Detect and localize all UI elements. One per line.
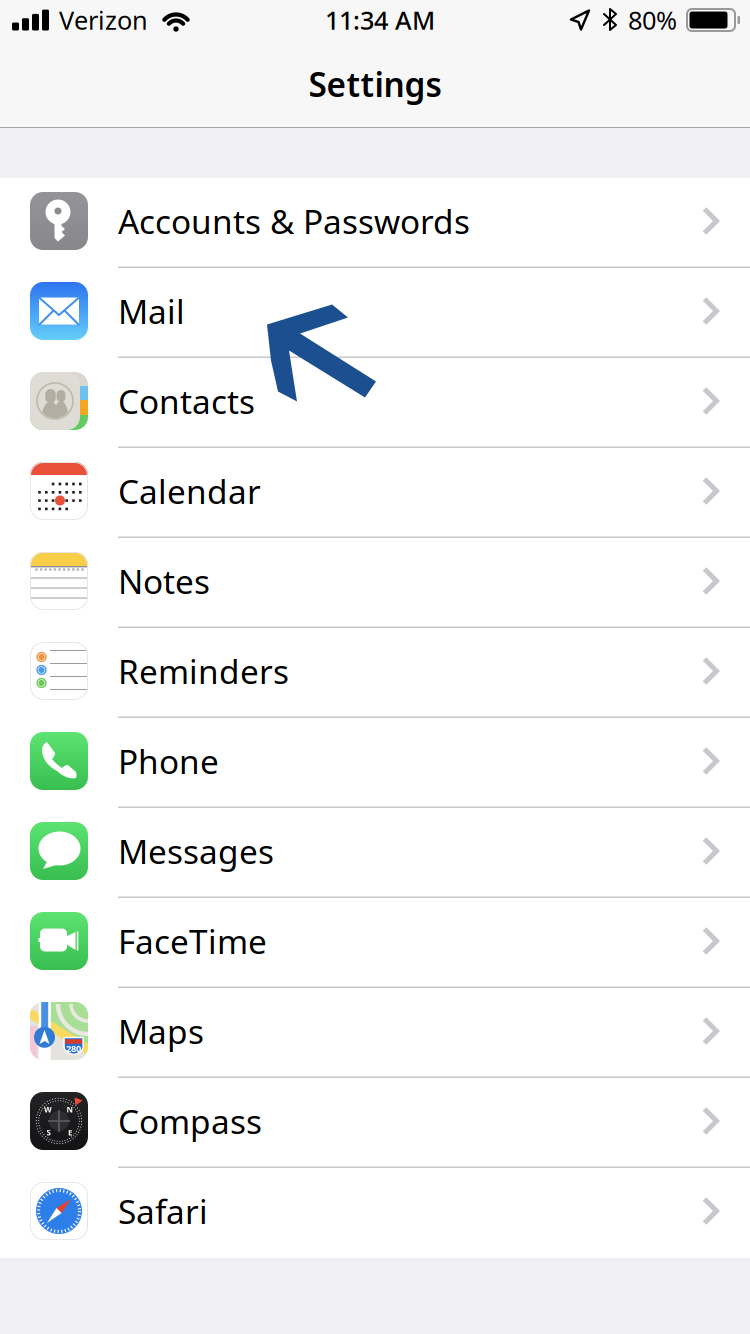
- staticText: 280: [66, 1042, 81, 1055]
- button[interactable]: W: [0, 1078, 750, 1168]
- button[interactable]: Phone: [0, 718, 750, 808]
- staticText: Messages: [118, 829, 274, 873]
- staticText: 80%: [628, 3, 677, 37]
- staticText: Accounts & Passwords: [118, 199, 470, 243]
- button[interactable]: Accounts & Passwords: [0, 178, 750, 268]
- staticText: Settings: [308, 62, 441, 106]
- button[interactable]: Mail: [0, 268, 750, 358]
- staticText: N: [66, 1104, 73, 1115]
- staticText: Contacts: [118, 379, 255, 423]
- button[interactable]: Reminders: [0, 628, 750, 718]
- button[interactable]: Notes: [0, 538, 750, 628]
- button[interactable]: Messages: [0, 808, 750, 898]
- staticText: Compass: [118, 1099, 262, 1143]
- button[interactable]: Contacts: [0, 358, 750, 448]
- staticText: Reminders: [118, 649, 289, 693]
- staticText: S: [46, 1127, 50, 1138]
- staticText: FaceTime: [118, 919, 267, 963]
- staticText: Verizon: [59, 3, 148, 37]
- staticText: Phone: [118, 739, 219, 783]
- staticText: Safari: [118, 1189, 208, 1233]
- button[interactable]: 280: [0, 988, 750, 1078]
- button[interactable]: Calendar: [0, 448, 750, 538]
- staticText: Notes: [118, 559, 210, 603]
- staticText: W: [44, 1104, 52, 1115]
- staticText: Mail: [118, 289, 185, 333]
- staticText: Maps: [118, 1009, 204, 1053]
- button[interactable]: Safari: [0, 1168, 750, 1258]
- button[interactable]: FaceTime: [0, 898, 750, 988]
- staticText: E: [68, 1127, 72, 1138]
- staticText: 11:34 AM: [325, 3, 435, 37]
- staticText: Calendar: [118, 469, 261, 513]
